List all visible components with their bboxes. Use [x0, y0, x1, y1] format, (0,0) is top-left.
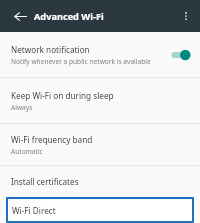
button[interactable]: Keep Wi-Fi on during sleep	[0, 78, 200, 123]
staticText: Notify whenever a public network is avai…	[11, 57, 151, 66]
staticText: Install certificates	[11, 176, 79, 187]
button[interactable]: Network notification toggle	[165, 45, 195, 65]
staticText: Wi-Fi frequency band	[11, 134, 93, 145]
staticText: Always	[11, 103, 33, 112]
button[interactable]: Install certificates	[0, 166, 200, 197]
button[interactable]: Network notification	[0, 32, 200, 77]
staticText: Network notification	[11, 44, 90, 55]
staticText: Advanced Wi-Fi	[34, 10, 104, 23]
staticText: Automatic	[11, 147, 43, 156]
button[interactable]: Back	[8, 4, 32, 28]
button[interactable]: More options	[175, 5, 197, 27]
staticText: Wi-Fi Direct	[12, 205, 56, 216]
button[interactable]: Wi-Fi Direct	[6, 197, 194, 223]
staticText: Keep Wi-Fi on during sleep	[11, 90, 114, 101]
button[interactable]: Wi-Fi frequency band	[0, 124, 200, 165]
